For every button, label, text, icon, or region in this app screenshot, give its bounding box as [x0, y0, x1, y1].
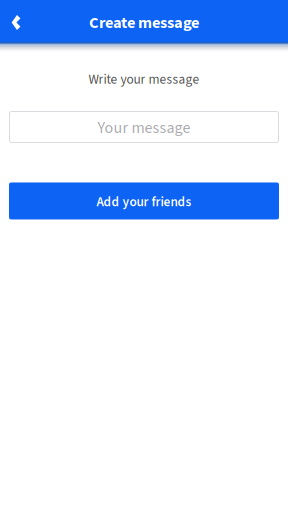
button[interactable]: Back: [5, 5, 27, 37]
button[interactable]: Your message: [9, 111, 279, 143]
button[interactable]: Add your friends: [9, 182, 279, 219]
staticText: Write your message: [88, 70, 199, 89]
staticText: Create message: [89, 11, 199, 35]
staticText: Your message: [97, 117, 190, 139]
staticText: Add your friends: [96, 192, 191, 211]
